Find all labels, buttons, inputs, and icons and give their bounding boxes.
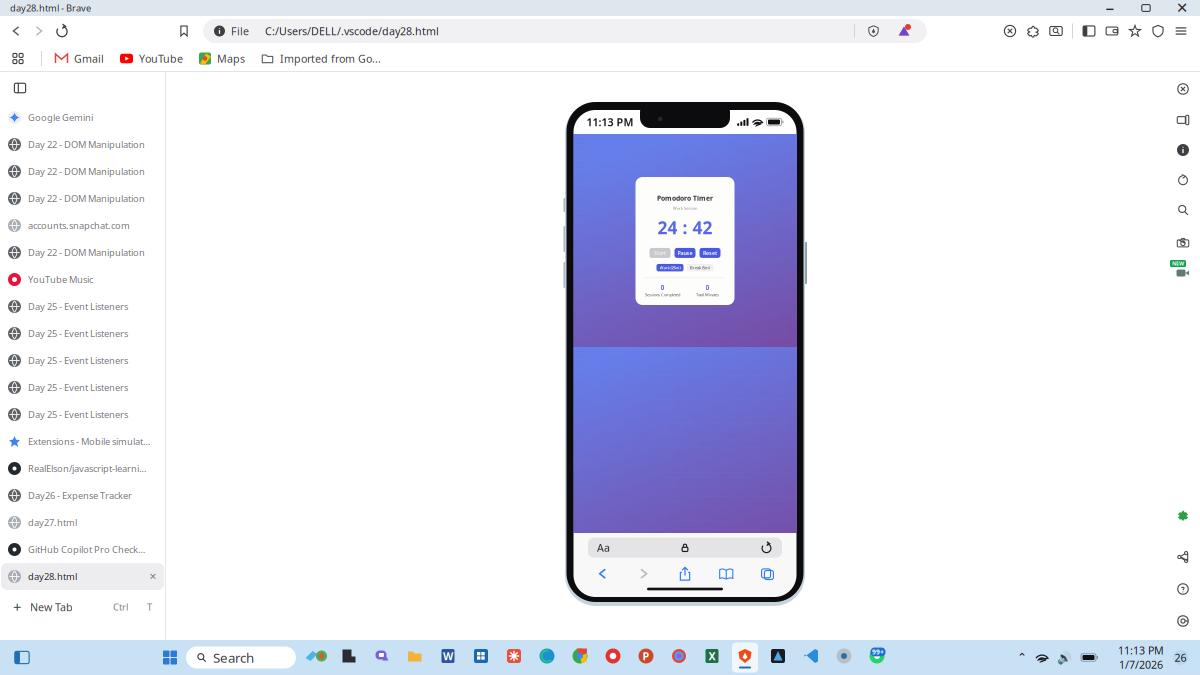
button[interactable]: Work (25m)	[656, 264, 683, 271]
button[interactable]: Taskbar app	[699, 642, 725, 672]
button[interactable]: Taskbar app	[435, 642, 461, 672]
staticText: 99+	[872, 647, 884, 656]
button[interactable]: Taskbar app	[765, 642, 791, 672]
button[interactable]: Forward	[28, 19, 50, 43]
button[interactable]: Back	[5, 19, 27, 43]
button[interactable]: Record	[1170, 260, 1196, 286]
button[interactable]: Back	[594, 566, 610, 582]
button[interactable]: Share	[677, 566, 693, 582]
button[interactable]: Search	[186, 646, 296, 668]
button[interactable]: RealElson/javascript-learning-jo	[1, 455, 164, 482]
button[interactable]: Maps	[194, 46, 250, 70]
button[interactable]: Close	[1164, 0, 1200, 16]
button[interactable]: Day26 - Expense Tracker	[1, 482, 164, 509]
button[interactable]: Start	[649, 248, 670, 258]
button[interactable]: Day 22 - DOM Manipulation	[1, 239, 164, 266]
button[interactable]: Maximize	[1128, 0, 1164, 16]
button[interactable]: Forward	[636, 566, 652, 582]
button[interactable]: Screenshot	[1170, 230, 1196, 256]
button[interactable]: Shields	[1151, 24, 1165, 38]
button[interactable]: Tabs	[759, 566, 775, 582]
button[interactable]: Taskbar app	[666, 642, 692, 672]
button[interactable]: Taskbar app	[468, 642, 494, 672]
button[interactable]: Share	[1170, 544, 1196, 570]
button[interactable]: GitHub Copilot Pro Checkout	[1, 536, 164, 563]
button[interactable]: Taskbar app	[303, 642, 329, 672]
button[interactable]: Day 25 - Event Listeners	[1, 293, 164, 320]
button[interactable]: Taskbar app	[732, 642, 758, 672]
button[interactable]: Gmail	[50, 46, 109, 70]
button[interactable]: Taskbar app	[534, 642, 560, 672]
button[interactable]: Extensions	[1170, 502, 1196, 528]
button[interactable]: Taskbar app	[864, 642, 890, 672]
button[interactable]: Reset	[699, 248, 720, 258]
button[interactable]: Taskbar app	[798, 642, 824, 672]
button[interactable]: Minimize	[1092, 0, 1128, 16]
button[interactable]: Bookmark	[173, 20, 195, 42]
button[interactable]: +	[2, 594, 163, 620]
button[interactable]: Taskbar app	[600, 642, 626, 672]
button[interactable]: Menu	[1174, 24, 1188, 38]
button[interactable]: Day 22 - DOM Manipulation	[1, 131, 164, 158]
button[interactable]: Close	[1170, 76, 1196, 102]
staticText: 26	[1174, 650, 1186, 665]
staticText: ✕	[149, 571, 157, 582]
staticText: Day 22 - DOM Manipulation	[28, 246, 145, 259]
button[interactable]: Imported from Go...	[256, 46, 386, 70]
staticText: Day26 - Expense Tracker	[28, 489, 132, 502]
button[interactable]: Taskbar app	[336, 642, 362, 672]
button[interactable]: Reload	[51, 19, 73, 43]
staticText: Break (5m)	[690, 265, 710, 270]
button[interactable]: Extensions	[1026, 24, 1040, 38]
staticText: Google Gemini	[28, 111, 93, 124]
button[interactable]: YouTube	[115, 46, 188, 70]
button[interactable]: Block	[1003, 24, 1017, 38]
button[interactable]: Extensions - Mobile simulator	[1, 428, 164, 455]
button[interactable]: Taskbar app	[831, 642, 857, 672]
staticText: Day 22 - DOM Manipulation	[28, 138, 145, 151]
button[interactable]: Favorites	[1128, 24, 1142, 38]
staticText: Ctrl	[113, 601, 128, 613]
button[interactable]: Day 22 - DOM Manipulation	[1, 185, 164, 212]
button[interactable]: Pause	[674, 248, 695, 258]
button[interactable]: Day 25 - Event Listeners	[1, 347, 164, 374]
button[interactable]: day28.html	[1, 563, 164, 590]
button[interactable]: Day 25 - Event Listeners	[1, 374, 164, 401]
button[interactable]: Help	[1170, 576, 1196, 602]
button[interactable]: Toggle sidebar	[9, 77, 31, 99]
button[interactable]: Split view	[1082, 24, 1096, 38]
button[interactable]: Rotate	[1170, 167, 1196, 193]
button[interactable]: day27.html	[1, 509, 164, 536]
button[interactable]: Apps	[7, 47, 29, 69]
button[interactable]: Settings	[1170, 608, 1196, 634]
button[interactable]: Day 25 - Event Listeners	[1, 320, 164, 347]
button[interactable]: Taskbar app	[501, 642, 527, 672]
button[interactable]: Taskbar app	[567, 642, 593, 672]
staticText: 0	[705, 283, 709, 292]
button[interactable]: Start	[161, 648, 179, 666]
button[interactable]: Day 22 - DOM Manipulation	[1, 158, 164, 185]
button[interactable]: Info	[1170, 137, 1196, 163]
staticText: Day 25 - Event Listeners	[28, 300, 128, 313]
button[interactable]: accounts.snapchat.com	[1, 212, 164, 239]
button[interactable]: Zoom	[1170, 197, 1196, 223]
button[interactable]: Device	[1170, 107, 1196, 133]
staticText: Gmail	[74, 51, 104, 66]
staticText: day27.html	[28, 516, 77, 529]
staticText: File	[231, 24, 249, 38]
staticText: Day 25 - Event Listeners	[28, 354, 128, 367]
button[interactable]: Taskbar app	[369, 642, 395, 672]
staticText: Pomodoro Timer	[657, 194, 713, 203]
button[interactable]: Taskbar app	[633, 642, 659, 672]
button[interactable]: Widgets	[10, 645, 34, 669]
staticText: Day 25 - Event Listeners	[28, 381, 128, 394]
button[interactable]: YouTube Music	[1, 266, 164, 293]
button[interactable]: Find	[1049, 24, 1063, 38]
button[interactable]: Aa	[588, 538, 782, 558]
button[interactable]: Break (5m)	[686, 264, 713, 271]
button[interactable]: Taskbar app	[402, 642, 428, 672]
button[interactable]: Google Gemini	[1, 104, 164, 131]
button[interactable]: Day 25 - Event Listeners	[1, 401, 164, 428]
button[interactable]: Wallet	[1105, 24, 1119, 38]
button[interactable]: Bookmarks	[718, 566, 734, 582]
